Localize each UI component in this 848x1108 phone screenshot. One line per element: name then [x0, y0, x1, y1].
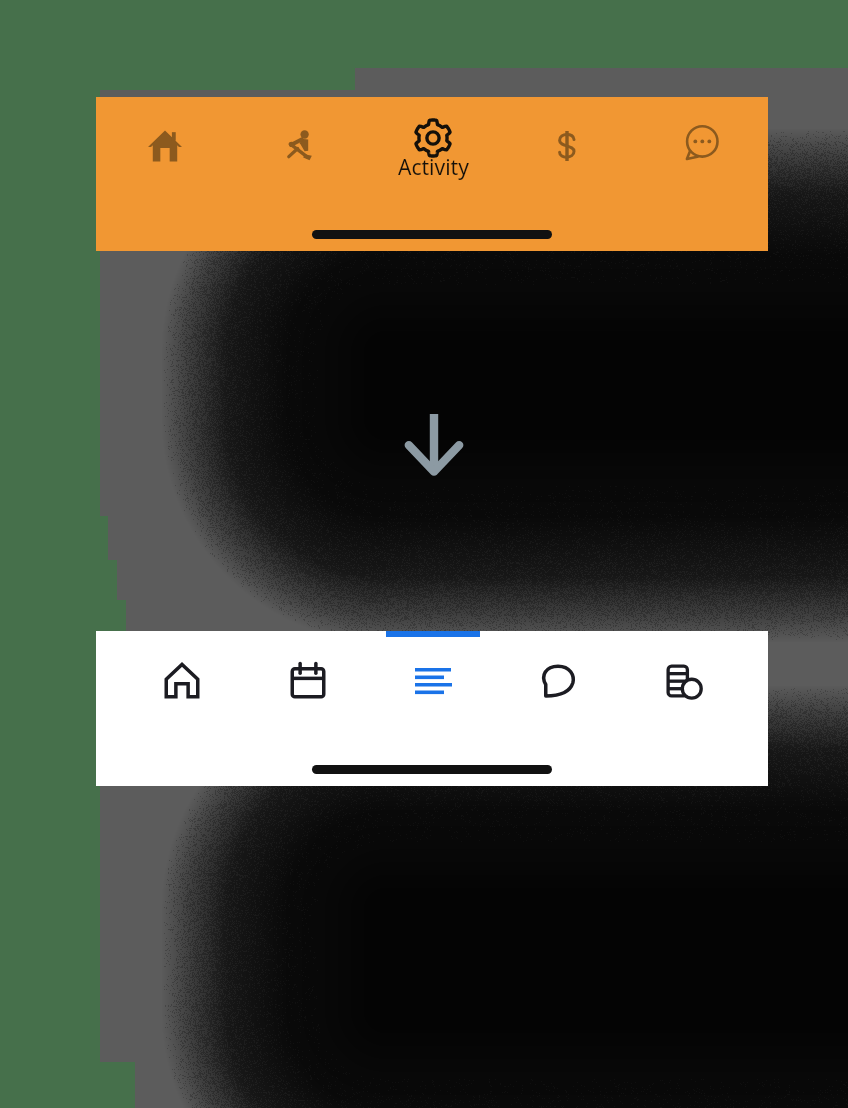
staticText: Activity — [398, 153, 469, 182]
button[interactable]: List — [370, 631, 495, 731]
button[interactable]: Activity — [366, 97, 500, 197]
button[interactable]: Money — [500, 97, 634, 197]
button[interactable]: Rowing — [231, 97, 366, 197]
button[interactable]: Coins — [620, 631, 745, 731]
button[interactable]: Chat — [634, 97, 768, 197]
button[interactable]: Calendar — [245, 631, 370, 731]
button[interactable]: Home — [96, 97, 231, 197]
button[interactable]: Home — [119, 631, 245, 731]
button[interactable]: Chat — [495, 631, 620, 731]
